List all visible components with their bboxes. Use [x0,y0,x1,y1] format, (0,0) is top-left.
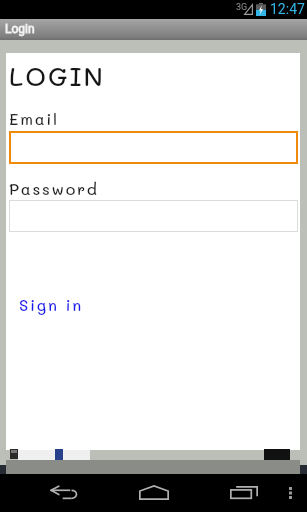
button[interactable]: More options [280,474,302,512]
staticText: 3G [236,2,248,13]
staticText: Sign in [19,294,84,315]
staticText: Login [5,22,35,36]
button[interactable]: Password input [9,200,298,232]
staticText: Email [9,108,59,129]
staticText: LOGIN [9,59,105,93]
button[interactable]: Back [38,474,90,512]
button[interactable]: Home [128,474,180,512]
staticText: 12:47 [270,1,305,17]
button[interactable]: Sign in [19,294,84,315]
staticText: Password [9,178,99,199]
button[interactable]: Email input [9,131,298,164]
button[interactable]: Recent apps [218,474,270,512]
